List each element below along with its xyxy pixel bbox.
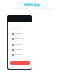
- button[interactable]: [8, 52, 32, 57]
- button[interactable]: [8, 42, 32, 47]
- button[interactable]: [8, 47, 32, 52]
- button[interactable]: [8, 36, 32, 41]
- button[interactable]: [10, 61, 30, 65]
- staticText: Lorem ipsum dolor sit amet consectetur e…: [13, 7, 52, 10]
- staticText: Mobile App: [24, 3, 40, 7]
- button[interactable]: [8, 31, 32, 36]
- button[interactable]: [7, 15, 32, 22]
